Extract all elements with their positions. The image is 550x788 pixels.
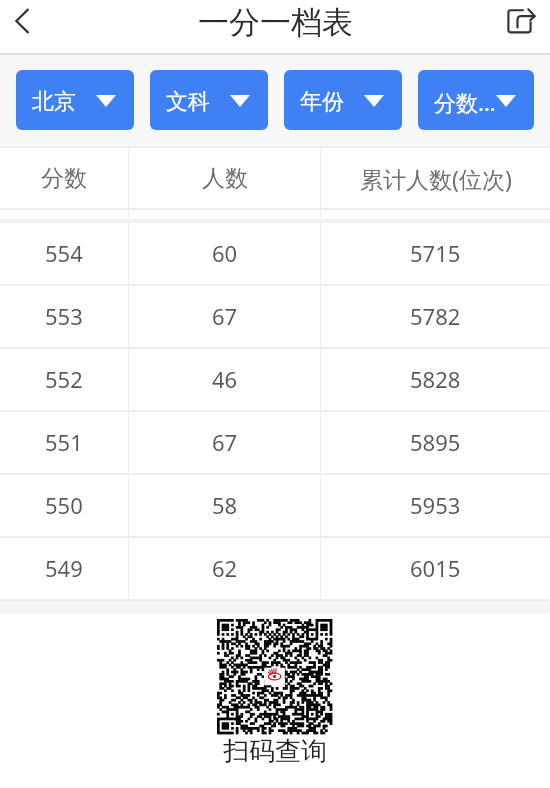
staticText: 分数 xyxy=(41,164,87,193)
button[interactable]: Back xyxy=(0,0,46,42)
staticText: 554 xyxy=(45,238,83,268)
button[interactable]: 552 xyxy=(0,349,550,412)
button[interactable]: 分数... xyxy=(418,70,534,130)
staticText: 58 xyxy=(212,490,238,520)
button[interactable]: 553 xyxy=(0,286,550,349)
staticText: 5715 xyxy=(410,238,461,268)
staticText: 553 xyxy=(45,301,83,331)
staticText: 67 xyxy=(212,427,238,457)
button[interactable]: Share xyxy=(498,0,550,42)
staticText: 6015 xyxy=(410,553,461,583)
staticText: 北京 xyxy=(32,88,76,116)
staticText: 5895 xyxy=(410,427,461,457)
staticText: 文科 xyxy=(166,88,210,116)
staticText: 5953 xyxy=(410,490,461,520)
staticText: 累计人数(位次) xyxy=(360,163,512,194)
staticText: 60 xyxy=(212,238,238,268)
staticText: 人数 xyxy=(202,164,248,193)
staticText: 一分一档表 xyxy=(198,3,353,42)
staticText: 62 xyxy=(212,553,238,583)
staticText: 67 xyxy=(212,301,238,331)
staticText: 分数... xyxy=(434,87,496,117)
button[interactable]: 551 xyxy=(0,412,550,475)
staticText: 46 xyxy=(212,364,238,394)
button[interactable]: 554 xyxy=(0,223,550,286)
staticText: 552 xyxy=(45,364,83,394)
button[interactable]: 550 xyxy=(0,475,550,538)
staticText: 5782 xyxy=(410,301,461,331)
button[interactable]: 文科 xyxy=(150,70,268,130)
staticText: 550 xyxy=(45,490,83,520)
button[interactable]: 年份 xyxy=(284,70,402,130)
staticText: 551 xyxy=(45,427,83,457)
staticText: 5828 xyxy=(410,364,461,394)
button[interactable]: 549 xyxy=(0,538,550,601)
staticText: 扫码查询 xyxy=(223,735,327,768)
button[interactable]: 北京 xyxy=(16,70,134,130)
staticText: 年份 xyxy=(300,88,344,116)
staticText: 549 xyxy=(45,553,83,583)
button[interactable]: QR code xyxy=(217,619,332,734)
